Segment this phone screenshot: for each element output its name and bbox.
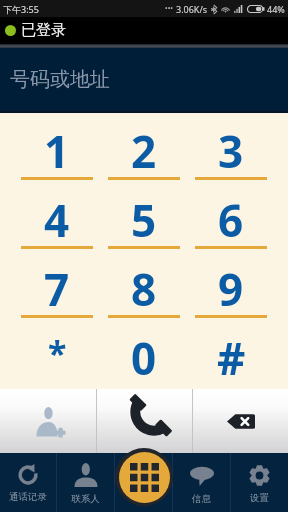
button[interactable]: 8 [108,251,180,320]
button[interactable]: 9 [195,251,267,320]
staticText: * [48,330,67,376]
button[interactable]: 4 [21,182,93,251]
button[interactable]: 6 [195,182,267,251]
button[interactable]: # [195,320,267,389]
button[interactable]: Delete [193,389,288,453]
staticText: 通话记录 [9,491,47,503]
staticText: 号码或地址 [10,67,110,92]
button[interactable]: 1 [21,113,93,182]
button[interactable]: Call [97,389,192,453]
staticText: 已登录 [21,21,66,40]
staticText: 8 [131,259,157,319]
staticText: 9 [218,259,244,319]
button[interactable]: Add contact [0,389,96,453]
button[interactable]: 0 [108,320,180,389]
button[interactable]: 7 [21,251,93,320]
staticText: 4 [44,190,70,250]
staticText: ••• [165,4,173,14]
staticText: 1 [44,121,70,181]
staticText: 2 [131,121,157,181]
staticText: # [217,328,246,388]
button[interactable]: 2 [108,113,180,182]
button[interactable]: 5 [108,182,180,251]
staticText: 3 [218,121,244,181]
staticText: 3.06K/s [176,3,208,15]
staticText: 7 [44,259,70,319]
button[interactable]: 通话记录 [0,453,56,512]
staticText: 下午3:55 [3,3,39,15]
button[interactable]: 联系人 [57,453,114,512]
staticText: 0 [131,328,157,388]
button[interactable]: 3 [195,113,267,182]
staticText: 5 [131,190,157,250]
button[interactable]: 信息 [173,453,230,512]
button[interactable]: 号码或地址 [0,48,288,113]
staticText: 6 [218,190,244,250]
staticText: 信息 [192,493,211,505]
staticText: 44% [267,3,285,15]
staticText: 设置 [250,492,269,504]
button[interactable]: * [21,320,93,389]
button[interactable]: 设置 [231,453,288,512]
button[interactable]: Dialpad [115,448,173,506]
staticText: 联系人 [71,493,100,505]
